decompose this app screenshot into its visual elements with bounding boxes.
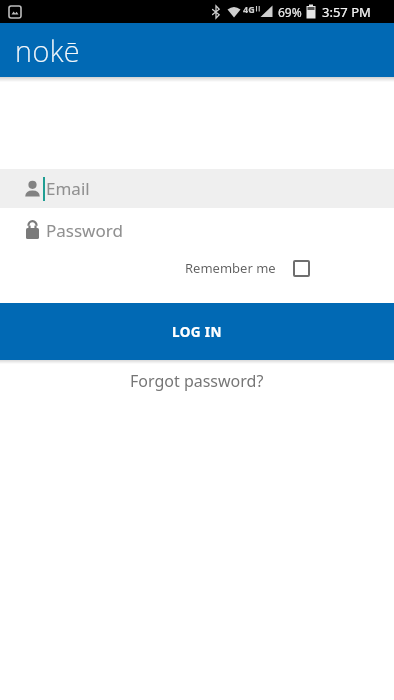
button[interactable]: Password — [0, 217, 394, 243]
button[interactable]: Forgot password? — [122, 368, 272, 394]
staticText: 4G — [243, 3, 255, 15]
button[interactable]: Email — [0, 169, 394, 208]
staticText: 3:57 PM — [322, 3, 371, 21]
staticText: LOG IN — [172, 323, 222, 341]
button[interactable] — [293, 260, 310, 277]
button[interactable]: LOG IN — [0, 303, 394, 360]
staticText: Forgot password? — [130, 370, 264, 392]
staticText: 69% — [278, 4, 302, 20]
staticText: Password — [46, 219, 123, 242]
staticText: Email — [46, 177, 90, 200]
staticText: Remember me — [185, 259, 276, 277]
staticText: nokē — [15, 31, 81, 70]
